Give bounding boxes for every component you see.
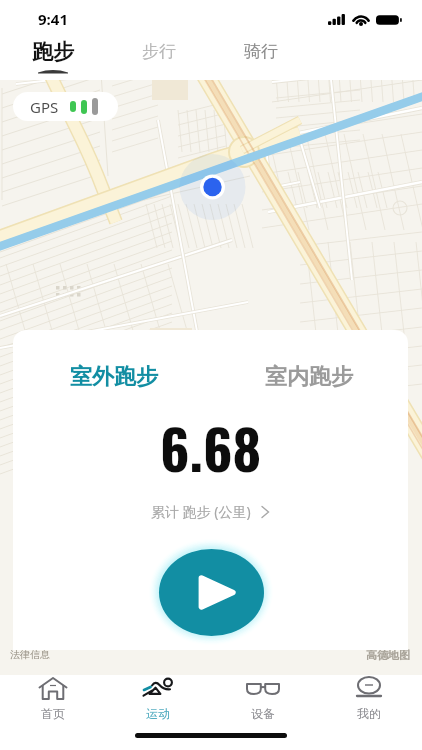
staticText: 首页 xyxy=(41,706,65,721)
staticText: 法律信息 xyxy=(10,648,50,661)
staticText: GPS xyxy=(30,97,59,117)
staticText: 跑步 xyxy=(32,39,74,65)
button[interactable]: Start run xyxy=(159,549,264,636)
button[interactable]: 骑行 xyxy=(224,38,298,80)
staticText: 室内跑步 xyxy=(265,363,353,391)
staticText: 累计 跑步 (公里) xyxy=(151,502,251,521)
button[interactable]: 室内跑步 xyxy=(255,357,363,397)
staticText: 室外跑步 xyxy=(70,363,158,391)
staticText: 6.68 xyxy=(160,406,262,488)
button[interactable]: 步行 xyxy=(122,38,196,80)
staticText: 设备 xyxy=(251,706,275,721)
button[interactable]: 累计 跑步 (公里) xyxy=(143,498,278,525)
button[interactable]: 运动 xyxy=(105,675,210,727)
button[interactable]: 室外跑步 xyxy=(60,357,168,397)
staticText: 步行 xyxy=(142,41,176,62)
staticText: 高德地图 xyxy=(366,648,410,662)
button[interactable]: 首页 xyxy=(0,675,105,727)
button[interactable]: 设备 xyxy=(210,675,316,727)
staticText: 我的 xyxy=(357,706,381,721)
button[interactable]: 我的 xyxy=(316,675,422,727)
staticText: 9:41 xyxy=(38,9,68,29)
staticText: 运动 xyxy=(146,706,170,721)
button[interactable]: 跑步 xyxy=(14,38,92,80)
staticText: 骑行 xyxy=(244,41,278,62)
button[interactable]: GPS xyxy=(13,92,118,121)
